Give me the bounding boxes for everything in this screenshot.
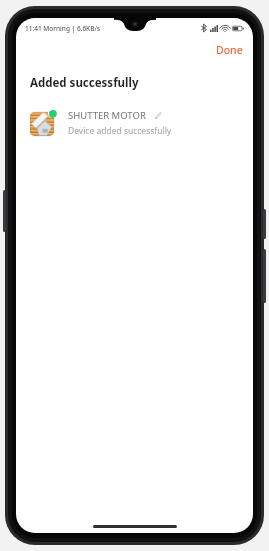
button[interactable]: Done xyxy=(206,40,253,60)
staticText: Added successfully xyxy=(30,75,139,91)
staticText: SHUTTER MOTOR xyxy=(68,109,146,122)
button[interactable]: Rename device xyxy=(151,108,165,122)
button[interactable]: SHUTTER MOTOR xyxy=(16,105,253,140)
staticText: 11:41 Morning | 6.6KB/s xyxy=(25,24,101,33)
staticText: Done xyxy=(216,43,243,57)
staticText: Device added successfully xyxy=(68,125,172,137)
